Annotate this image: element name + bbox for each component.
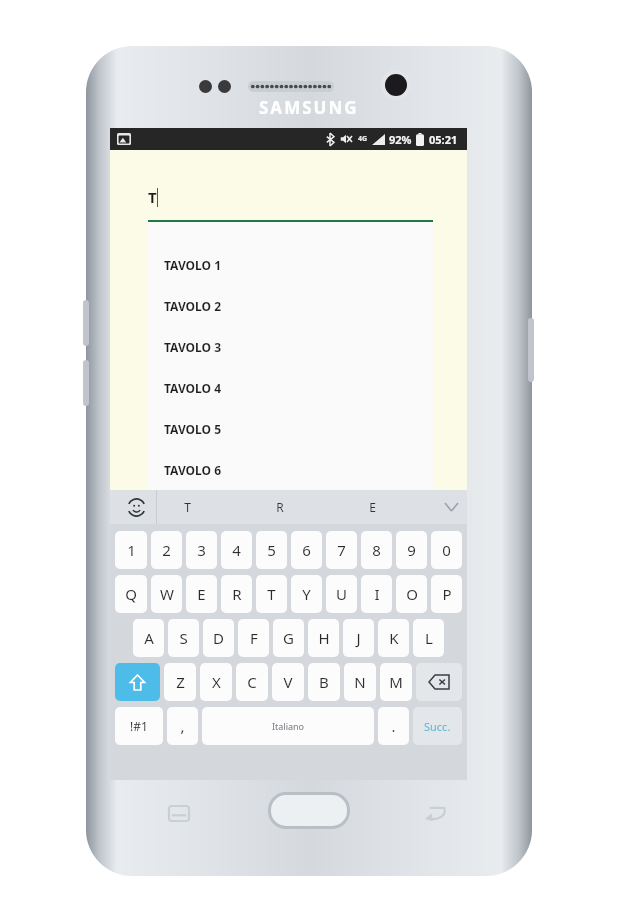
staticText: U bbox=[336, 584, 347, 604]
button[interactable]: Backspace bbox=[416, 663, 462, 701]
button[interactable]: 5 bbox=[256, 531, 287, 569]
button[interactable]: S bbox=[168, 619, 199, 657]
button[interactable]: TAVOLO 2 bbox=[148, 285, 433, 326]
staticText: E bbox=[197, 584, 206, 604]
staticText: TAVOLO 4 bbox=[164, 380, 222, 396]
button[interactable]: 4 bbox=[221, 531, 252, 569]
staticText: 1 bbox=[127, 540, 136, 560]
button[interactable]: 8 bbox=[361, 531, 392, 569]
button[interactable]: O bbox=[396, 575, 427, 613]
button[interactable]: 7 bbox=[326, 531, 357, 569]
button[interactable]: TAVOLO 3 bbox=[148, 326, 433, 367]
staticText: B bbox=[319, 672, 329, 692]
staticText: 3 bbox=[197, 540, 206, 560]
button[interactable]: A bbox=[133, 619, 164, 657]
button[interactable]: Shift bbox=[115, 663, 160, 701]
button[interactable]: Z bbox=[164, 663, 196, 701]
button[interactable]: R bbox=[240, 490, 320, 524]
button[interactable]: 3 bbox=[186, 531, 217, 569]
button[interactable]: Italiano bbox=[202, 707, 374, 745]
button[interactable]: Emoji bbox=[116, 490, 156, 524]
staticText: T bbox=[184, 499, 191, 515]
button[interactable]: V bbox=[272, 663, 304, 701]
staticText: T bbox=[148, 187, 157, 207]
staticText: P bbox=[442, 584, 452, 604]
button[interactable]: G bbox=[273, 619, 304, 657]
staticText: 7 bbox=[337, 540, 346, 560]
button[interactable]: X bbox=[200, 663, 232, 701]
button[interactable]: P bbox=[431, 575, 462, 613]
button[interactable]: U bbox=[326, 575, 357, 613]
staticText: F bbox=[250, 628, 258, 648]
button[interactable]: 0 bbox=[431, 531, 462, 569]
staticText: M bbox=[389, 672, 403, 692]
button[interactable]: , bbox=[167, 707, 198, 745]
button[interactable]: N bbox=[344, 663, 376, 701]
staticText: D bbox=[213, 628, 224, 648]
button[interactable]: F bbox=[238, 619, 269, 657]
button[interactable]: I bbox=[361, 575, 392, 613]
staticText: L bbox=[425, 628, 433, 648]
button[interactable]: H bbox=[308, 619, 339, 657]
button[interactable]: Y bbox=[291, 575, 322, 613]
staticText: !#1 bbox=[130, 718, 148, 734]
button[interactable]: Home bbox=[268, 792, 350, 829]
button[interactable]: T bbox=[147, 490, 227, 524]
staticText: 9 bbox=[407, 540, 416, 560]
staticText: Q bbox=[125, 584, 137, 604]
button[interactable]: T bbox=[256, 575, 287, 613]
staticText: 05:21 bbox=[429, 132, 458, 147]
button[interactable]: !#1 bbox=[115, 707, 163, 745]
staticText: Y bbox=[302, 584, 311, 604]
staticText: Z bbox=[176, 672, 185, 692]
staticText: TAVOLO 2 bbox=[164, 298, 222, 314]
button[interactable]: L bbox=[413, 619, 444, 657]
button[interactable]: W bbox=[151, 575, 182, 613]
button[interactable]: 2 bbox=[151, 531, 182, 569]
button[interactable]: T bbox=[148, 174, 433, 220]
button[interactable]: . bbox=[378, 707, 409, 745]
staticText: C bbox=[247, 672, 257, 692]
button[interactable]: Back bbox=[418, 796, 452, 830]
staticText: SAMSUNG bbox=[259, 96, 359, 119]
staticText: V bbox=[283, 672, 293, 692]
staticText: , bbox=[180, 716, 185, 736]
staticText: K bbox=[389, 628, 399, 648]
staticText: TAVOLO 5 bbox=[164, 421, 222, 437]
staticText: G bbox=[283, 628, 294, 648]
staticText: S bbox=[179, 628, 188, 648]
button[interactable]: D bbox=[203, 619, 234, 657]
staticText: N bbox=[354, 672, 366, 692]
staticText: 4G bbox=[358, 134, 368, 144]
staticText: TAVOLO 6 bbox=[164, 462, 222, 478]
button[interactable]: 1 bbox=[115, 531, 147, 569]
button[interactable]: TAVOLO 1 bbox=[148, 244, 433, 285]
staticText: T bbox=[267, 584, 276, 604]
button[interactable]: M bbox=[380, 663, 412, 701]
button[interactable]: C bbox=[236, 663, 268, 701]
staticText: R bbox=[276, 499, 284, 515]
staticText: 92% bbox=[389, 132, 412, 147]
staticText: 5 bbox=[267, 540, 276, 560]
button[interactable]: K bbox=[378, 619, 409, 657]
button[interactable]: TAVOLO 6 bbox=[148, 449, 433, 490]
staticText: 8 bbox=[372, 540, 381, 560]
staticText: TAVOLO 3 bbox=[164, 339, 222, 355]
staticText: TAVOLO 1 bbox=[164, 257, 222, 273]
button[interactable]: 9 bbox=[396, 531, 427, 569]
button[interactable]: B bbox=[308, 663, 340, 701]
staticText: W bbox=[160, 584, 174, 604]
button[interactable]: Succ. bbox=[413, 707, 462, 745]
button[interactable]: TAVOLO 7 bbox=[148, 490, 433, 531]
staticText: O bbox=[406, 584, 418, 604]
button[interactable]: Recent apps bbox=[162, 796, 196, 830]
button[interactable]: R bbox=[221, 575, 252, 613]
button[interactable]: Q bbox=[115, 575, 147, 613]
button[interactable]: E bbox=[332, 490, 412, 524]
button[interactable]: 6 bbox=[291, 531, 322, 569]
button[interactable]: E bbox=[186, 575, 217, 613]
button[interactable]: J bbox=[343, 619, 374, 657]
button[interactable]: TAVOLO 5 bbox=[148, 408, 433, 449]
button[interactable]: Expand suggestions bbox=[435, 490, 467, 524]
button[interactable]: TAVOLO 4 bbox=[148, 367, 433, 408]
